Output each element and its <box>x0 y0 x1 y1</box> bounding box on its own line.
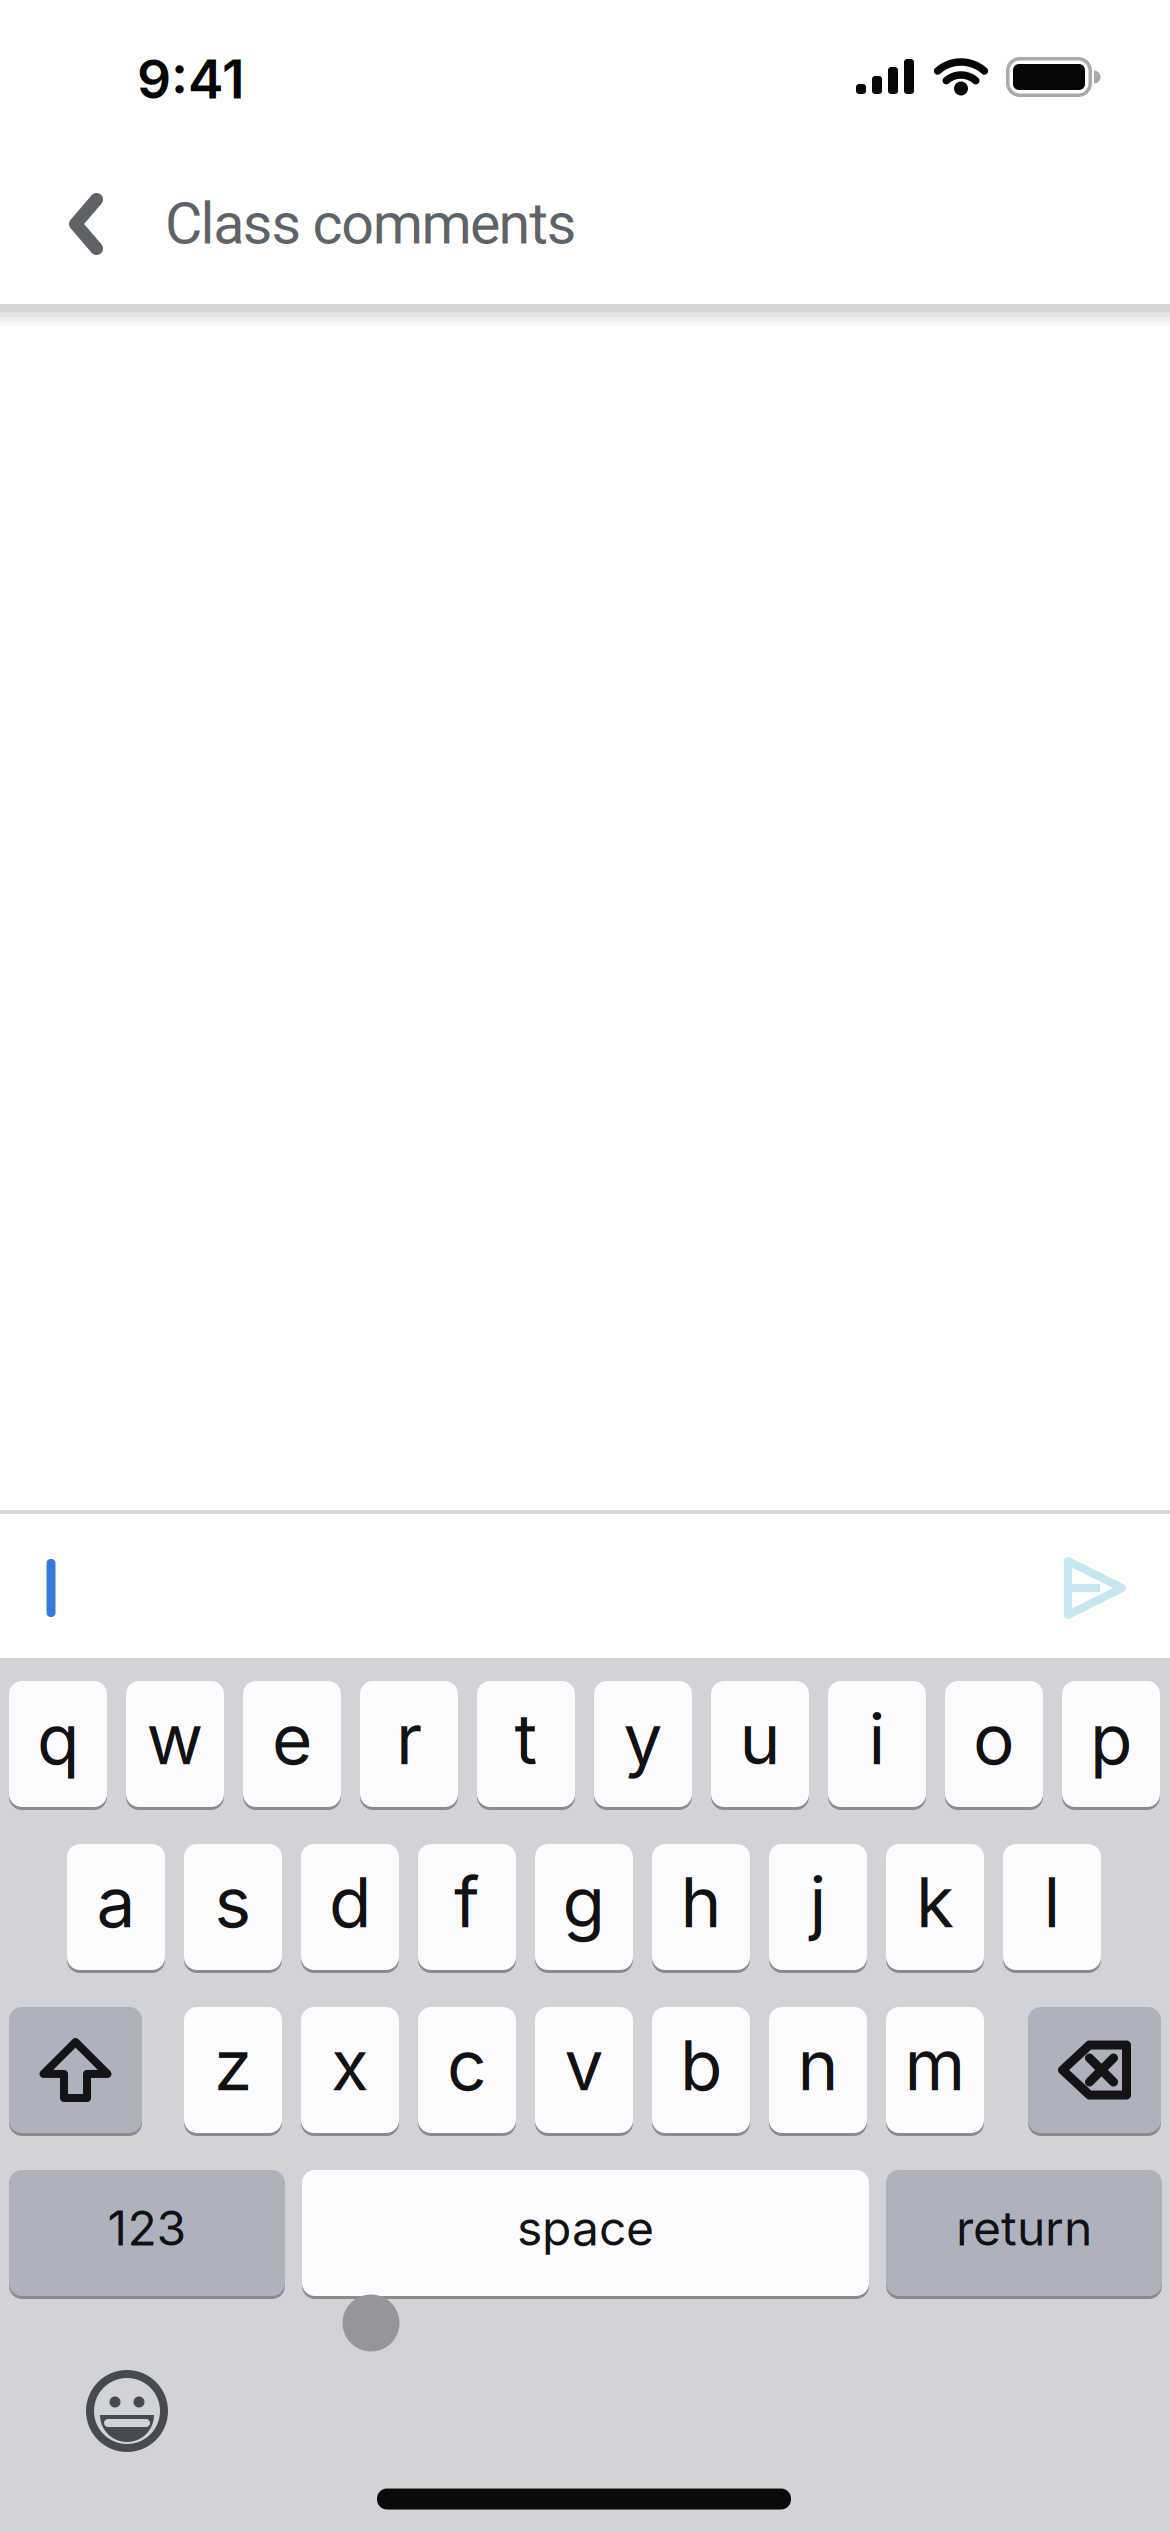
button[interactable]: d <box>301 1844 399 1970</box>
button[interactable]: h <box>652 1844 750 1970</box>
button[interactable]: Emoji <box>85 2369 169 2453</box>
button[interactable]: g <box>535 1844 633 1970</box>
staticText: r <box>396 1697 422 1781</box>
staticText: h <box>680 1860 721 1944</box>
button[interactable]: x <box>301 2007 399 2133</box>
staticText: w <box>146 1697 203 1781</box>
button[interactable]: e <box>243 1681 341 1807</box>
staticText: e <box>272 1697 312 1781</box>
button[interactable]: w <box>126 1681 224 1807</box>
staticText: m <box>904 2023 965 2107</box>
staticText: g <box>562 1860 605 1944</box>
staticText: d <box>329 1860 371 1944</box>
staticText: o <box>973 1697 1015 1781</box>
staticText: return <box>956 2199 1092 2257</box>
staticText: k <box>916 1860 954 1944</box>
button[interactable]: Home <box>377 2488 791 2509</box>
staticText: j <box>809 1860 826 1944</box>
staticText: i <box>868 1697 885 1781</box>
button[interactable]: space <box>302 2170 869 2296</box>
staticText: Class comments <box>165 190 577 258</box>
staticText: u <box>739 1697 780 1781</box>
staticText: 9:41 <box>137 47 245 111</box>
staticText: n <box>797 2023 838 2107</box>
button[interactable]: f <box>418 1844 516 1970</box>
button[interactable]: t <box>477 1681 575 1807</box>
button[interactable]: c <box>418 2007 516 2133</box>
button[interactable]: return <box>886 2170 1162 2296</box>
staticText: 123 <box>107 2199 186 2257</box>
staticText: t <box>514 1697 537 1781</box>
staticText: a <box>96 1860 135 1944</box>
button[interactable]: z <box>184 2007 282 2133</box>
staticText: c <box>447 2023 487 2107</box>
button[interactable]: i <box>828 1681 926 1807</box>
button[interactable]: v <box>535 2007 633 2133</box>
button[interactable]: Send <box>1066 1558 1130 1618</box>
button[interactable]: r <box>360 1681 458 1807</box>
button[interactable]: p <box>1062 1681 1160 1807</box>
button[interactable]: y <box>594 1681 692 1807</box>
button[interactable]: o <box>945 1681 1043 1807</box>
staticText: f <box>454 1860 480 1944</box>
staticText: b <box>680 2023 722 2107</box>
button[interactable]: n <box>769 2007 867 2133</box>
staticText: z <box>214 2023 252 2107</box>
button[interactable]: q <box>9 1681 107 1807</box>
button[interactable]: m <box>886 2007 984 2133</box>
button[interactable]: l <box>1003 1844 1101 1970</box>
staticText: l <box>1043 1860 1060 1944</box>
button[interactable]: j <box>769 1844 867 1970</box>
button[interactable]: Back <box>75 199 96 248</box>
staticText: space <box>517 2199 654 2257</box>
staticText: x <box>331 2023 369 2107</box>
button[interactable]: a <box>67 1844 165 1970</box>
button[interactable]: 123 <box>9 2170 285 2296</box>
staticText: q <box>37 1697 79 1781</box>
button[interactable]: s <box>184 1844 282 1970</box>
button[interactable]: Shift <box>9 2007 142 2133</box>
button[interactable]: k <box>886 1844 984 1970</box>
staticText: p <box>1090 1697 1132 1781</box>
button[interactable]: b <box>652 2007 750 2133</box>
staticText: s <box>214 1860 251 1944</box>
button[interactable]: u <box>711 1681 809 1807</box>
staticText: y <box>623 1697 662 1781</box>
button[interactable]: Delete <box>1028 2007 1161 2133</box>
staticText: v <box>564 2023 603 2107</box>
